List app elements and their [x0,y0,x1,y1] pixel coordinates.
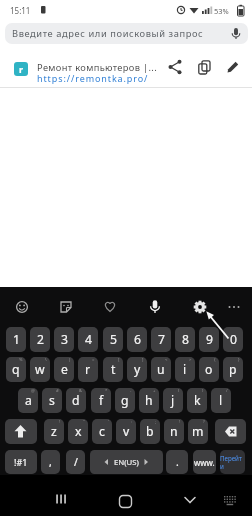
staticText: m [192,423,204,440]
staticText: 15:11 [10,5,31,16]
button[interactable]: EN(US) [90,450,163,474]
button[interactable]: 1 [6,327,26,352]
button[interactable] [111,487,139,515]
button[interactable]: a [18,388,38,413]
button[interactable]: y [127,357,147,382]
button[interactable] [10,295,34,319]
button[interactable]: b [140,419,160,444]
button[interactable]: https://remontka.pro/ [37,72,149,84]
staticText: # [56,388,59,394]
staticText: 8 [182,331,189,348]
staticText: \ [45,357,47,363]
button[interactable]: i [175,357,195,382]
button[interactable]: c [92,419,112,444]
staticText: / [74,455,78,469]
staticText: q [12,361,20,378]
staticText: 5 [110,331,117,348]
button[interactable]: r [78,357,98,382]
button[interactable]: t [103,357,123,382]
button[interactable] [195,58,213,76]
button[interactable] [188,295,212,319]
button[interactable]: m [188,419,208,444]
button[interactable] [215,419,246,444]
button[interactable]: n [164,419,184,444]
button[interactable]: !#1 [5,450,37,474]
staticText: : [131,419,133,425]
button[interactable]: f [91,388,111,413]
staticText: t [111,361,116,378]
button[interactable]: r [14,62,28,76]
button[interactable]: / [66,450,85,474]
button[interactable] [98,295,122,319]
button[interactable]: v [116,419,136,444]
button[interactable]: h [139,388,159,413]
staticText: l [219,392,223,409]
button[interactable]: j [163,388,183,413]
staticText: 1 [13,331,20,348]
button[interactable]: Введите адрес или поисковый запрос [5,23,248,44]
button[interactable]: www. [193,450,216,474]
button[interactable]: 3 [54,327,74,352]
button[interactable]: Ремонт компьютеров |... [37,61,158,74]
button[interactable]: k [187,388,207,413]
button[interactable]: o [199,357,219,382]
button[interactable] [47,485,75,513]
button[interactable]: 8 [175,327,195,352]
staticText: ! [59,419,61,425]
button[interactable]: z [44,419,64,444]
button[interactable]: g [115,388,135,413]
button[interactable]: 9 [199,327,219,352]
button[interactable] [143,295,167,319]
button[interactable]: 4 [78,327,98,352]
button[interactable]: x [68,419,88,444]
button[interactable]: Перейти [220,450,245,474]
button[interactable] [54,295,78,319]
button[interactable]: e [54,357,74,382]
staticText: { [214,357,216,363]
button[interactable]: 7 [151,327,171,352]
button[interactable] [222,295,246,319]
button[interactable]: l [211,388,231,413]
staticText: % [19,357,23,363]
staticText: ] [142,357,144,363]
button[interactable]: d [66,388,86,413]
button[interactable]: p [223,357,243,382]
button[interactable]: q [6,357,26,382]
staticText: c [99,423,105,440]
staticText: + [153,388,156,394]
staticText: & [79,388,83,394]
staticText: " [83,419,85,425]
button[interactable]: 6 [127,327,147,352]
staticText: g [121,392,129,409]
staticText: - [130,388,132,394]
staticText: * [105,388,108,394]
staticText: 3 [61,331,68,348]
staticText: 9 [206,331,213,348]
button[interactable] [218,489,242,513]
button[interactable]: 2 [30,327,50,352]
staticText: = [92,357,95,363]
staticText: h [145,392,153,409]
staticText: ( [178,388,180,394]
button[interactable] [166,58,184,76]
button[interactable]: . [166,450,188,474]
staticText: , [49,455,52,469]
button[interactable]: 5 [103,327,123,352]
staticText: 0 [230,331,237,348]
button[interactable]: 0 [223,327,243,352]
button[interactable]: s [42,388,62,413]
staticText: y [134,361,141,378]
staticText: } [238,357,240,363]
button[interactable]: u [151,357,171,382]
staticText: [ [118,357,120,363]
staticText: a [25,392,32,409]
button[interactable] [5,419,37,444]
staticText: www. [194,457,215,468]
staticText: ; [155,419,157,425]
button[interactable]: w [30,357,50,382]
button[interactable] [224,58,242,76]
button[interactable]: , [41,450,60,474]
button[interactable] [176,486,204,514]
staticText: 2 [37,331,44,348]
staticText: !#1 [14,456,28,468]
